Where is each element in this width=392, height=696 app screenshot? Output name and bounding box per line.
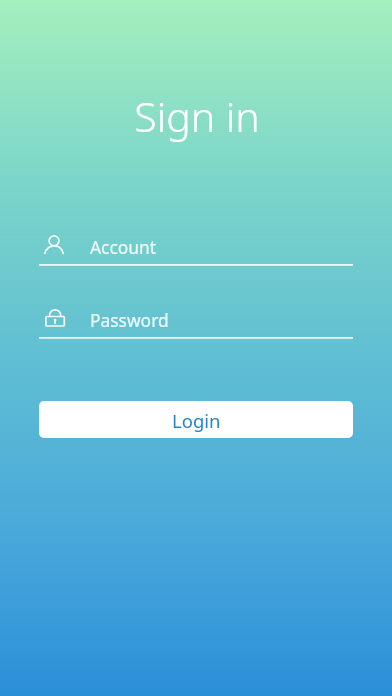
button[interactable]: Account	[39, 228, 353, 266]
other: Password	[43, 304, 69, 330]
staticText: Login	[172, 408, 221, 433]
button[interactable]: Login	[39, 401, 353, 438]
button[interactable]: Password	[39, 301, 353, 339]
staticText: Account	[90, 235, 157, 259]
staticText: Password	[90, 308, 169, 332]
staticText: Sign in	[1, 88, 392, 144]
other: Account	[41, 231, 67, 257]
